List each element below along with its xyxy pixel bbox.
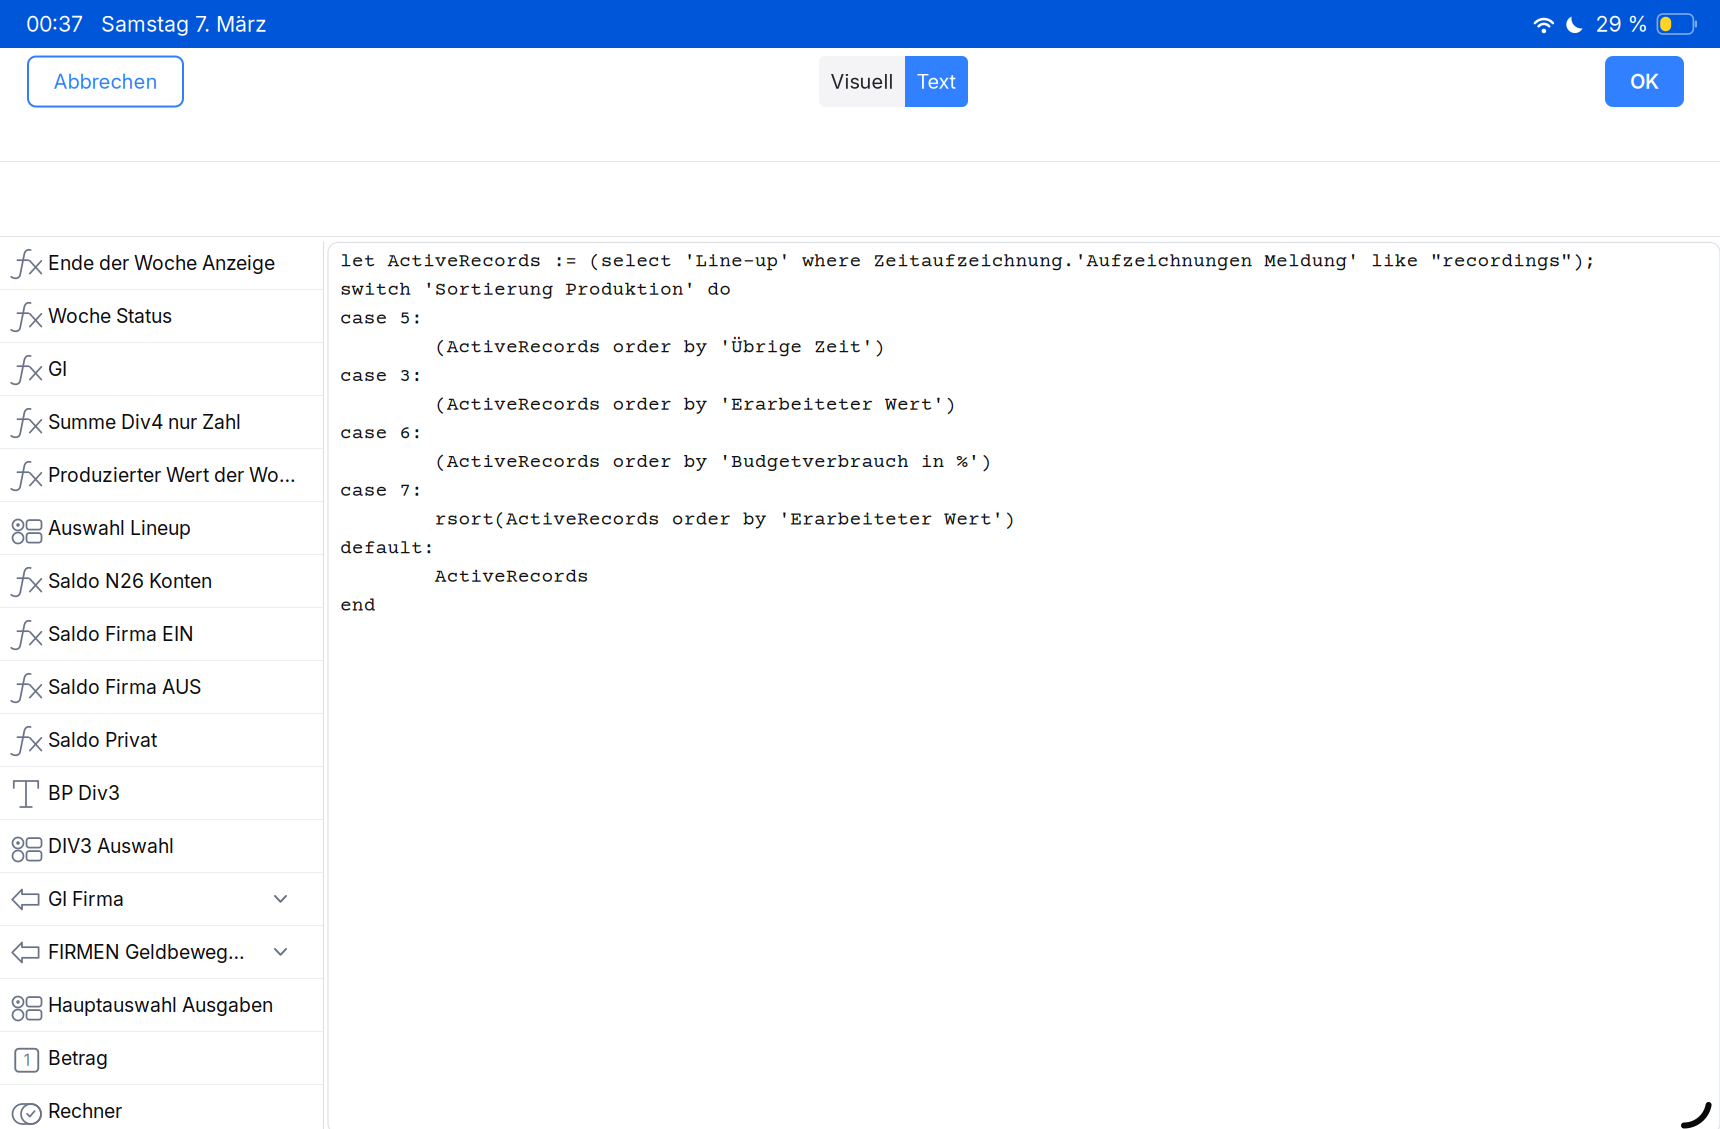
button[interactable]: Text: [905, 56, 968, 107]
button[interactable]: 1: [0, 1032, 323, 1085]
button[interactable]: GI: [0, 343, 323, 396]
staticText: GI: [48, 357, 67, 381]
button[interactable]: Auswahl Lineup: [0, 502, 323, 555]
staticText: Auswahl Lineup: [48, 516, 191, 540]
staticText: Saldo N26 Konten: [48, 569, 212, 593]
staticText: let ActiveRecords := (select 'Line-up' w…: [340, 251, 1596, 273]
button[interactable]: BP Div3: [0, 767, 323, 820]
button[interactable]: Abbrechen: [28, 56, 183, 106]
staticText: GI Firma: [48, 887, 124, 911]
button[interactable]: Woche Status: [0, 290, 323, 343]
button[interactable]: GI Firma: [0, 873, 323, 926]
staticText: 29 %: [1595, 11, 1648, 37]
button[interactable]: DIV3 Auswahl: [0, 820, 323, 873]
staticText: ActiveRecords: [340, 567, 589, 588]
button[interactable]: Produzierter Wert der Wo…: [0, 449, 323, 502]
button[interactable]: Summe Div4 nur Zahl: [0, 396, 323, 449]
staticText: Summe Div4 nur Zahl: [48, 410, 241, 434]
staticText: 1: [24, 1051, 30, 1070]
staticText: Saldo Firma EIN: [48, 622, 194, 646]
staticText: Hauptauswahl Ausgaben: [48, 993, 273, 1017]
staticText: rsort(ActiveRecords order by 'Erarbeitet…: [340, 509, 1016, 531]
staticText: Rechner: [48, 1099, 122, 1123]
staticText: Text: [916, 69, 956, 94]
staticText: (ActiveRecords order by 'Budgetverbrauch…: [340, 452, 992, 474]
staticText: default:: [340, 538, 435, 560]
button[interactable]: Ende der Woche Anzeige: [0, 237, 323, 290]
staticText: (ActiveRecords order by 'Erarbeiteter We…: [340, 394, 956, 416]
staticText: BP Div3: [48, 781, 120, 805]
button[interactable]: Visuell: [819, 56, 905, 107]
staticText: Ende der Woche Anzeige: [48, 251, 275, 275]
staticText: Produzierter Wert der Wo…: [48, 463, 296, 487]
staticText: end: [340, 595, 376, 617]
staticText: switch 'Sortierung Produktion' do: [340, 280, 731, 301]
button[interactable]: Rechner: [0, 1085, 323, 1129]
button[interactable]: OK: [1605, 56, 1684, 107]
button[interactable]: Saldo Privat: [0, 714, 323, 767]
staticText: Saldo Firma AUS: [48, 675, 201, 699]
staticText: case 3:: [340, 366, 423, 388]
staticText: case 7:: [340, 480, 423, 502]
staticText: Visuell: [830, 69, 893, 94]
staticText: case 6:: [340, 423, 423, 445]
button[interactable]: FIRMEN Geldbeweg…: [0, 926, 323, 979]
staticText: Woche Status: [48, 304, 172, 328]
staticText: Samstag 7. März: [101, 11, 267, 37]
staticText: case 5:: [340, 308, 423, 330]
staticText: FIRMEN Geldbeweg…: [48, 940, 245, 964]
staticText: Betrag: [48, 1046, 108, 1070]
staticText: Saldo Privat: [48, 728, 157, 752]
staticText: 00:37: [26, 11, 83, 37]
staticText: DIV3 Auswahl: [48, 834, 174, 858]
button[interactable]: Saldo Firma EIN: [0, 608, 323, 661]
staticText: Abbrechen: [53, 69, 157, 94]
staticText: (ActiveRecords order by 'Übrige Zeit'): [340, 337, 885, 359]
button[interactable]: Saldo Firma AUS: [0, 661, 323, 714]
button[interactable]: Saldo N26 Konten: [0, 555, 323, 608]
button[interactable]: Hauptauswahl Ausgaben: [0, 979, 323, 1032]
staticText: OK: [1630, 69, 1659, 94]
